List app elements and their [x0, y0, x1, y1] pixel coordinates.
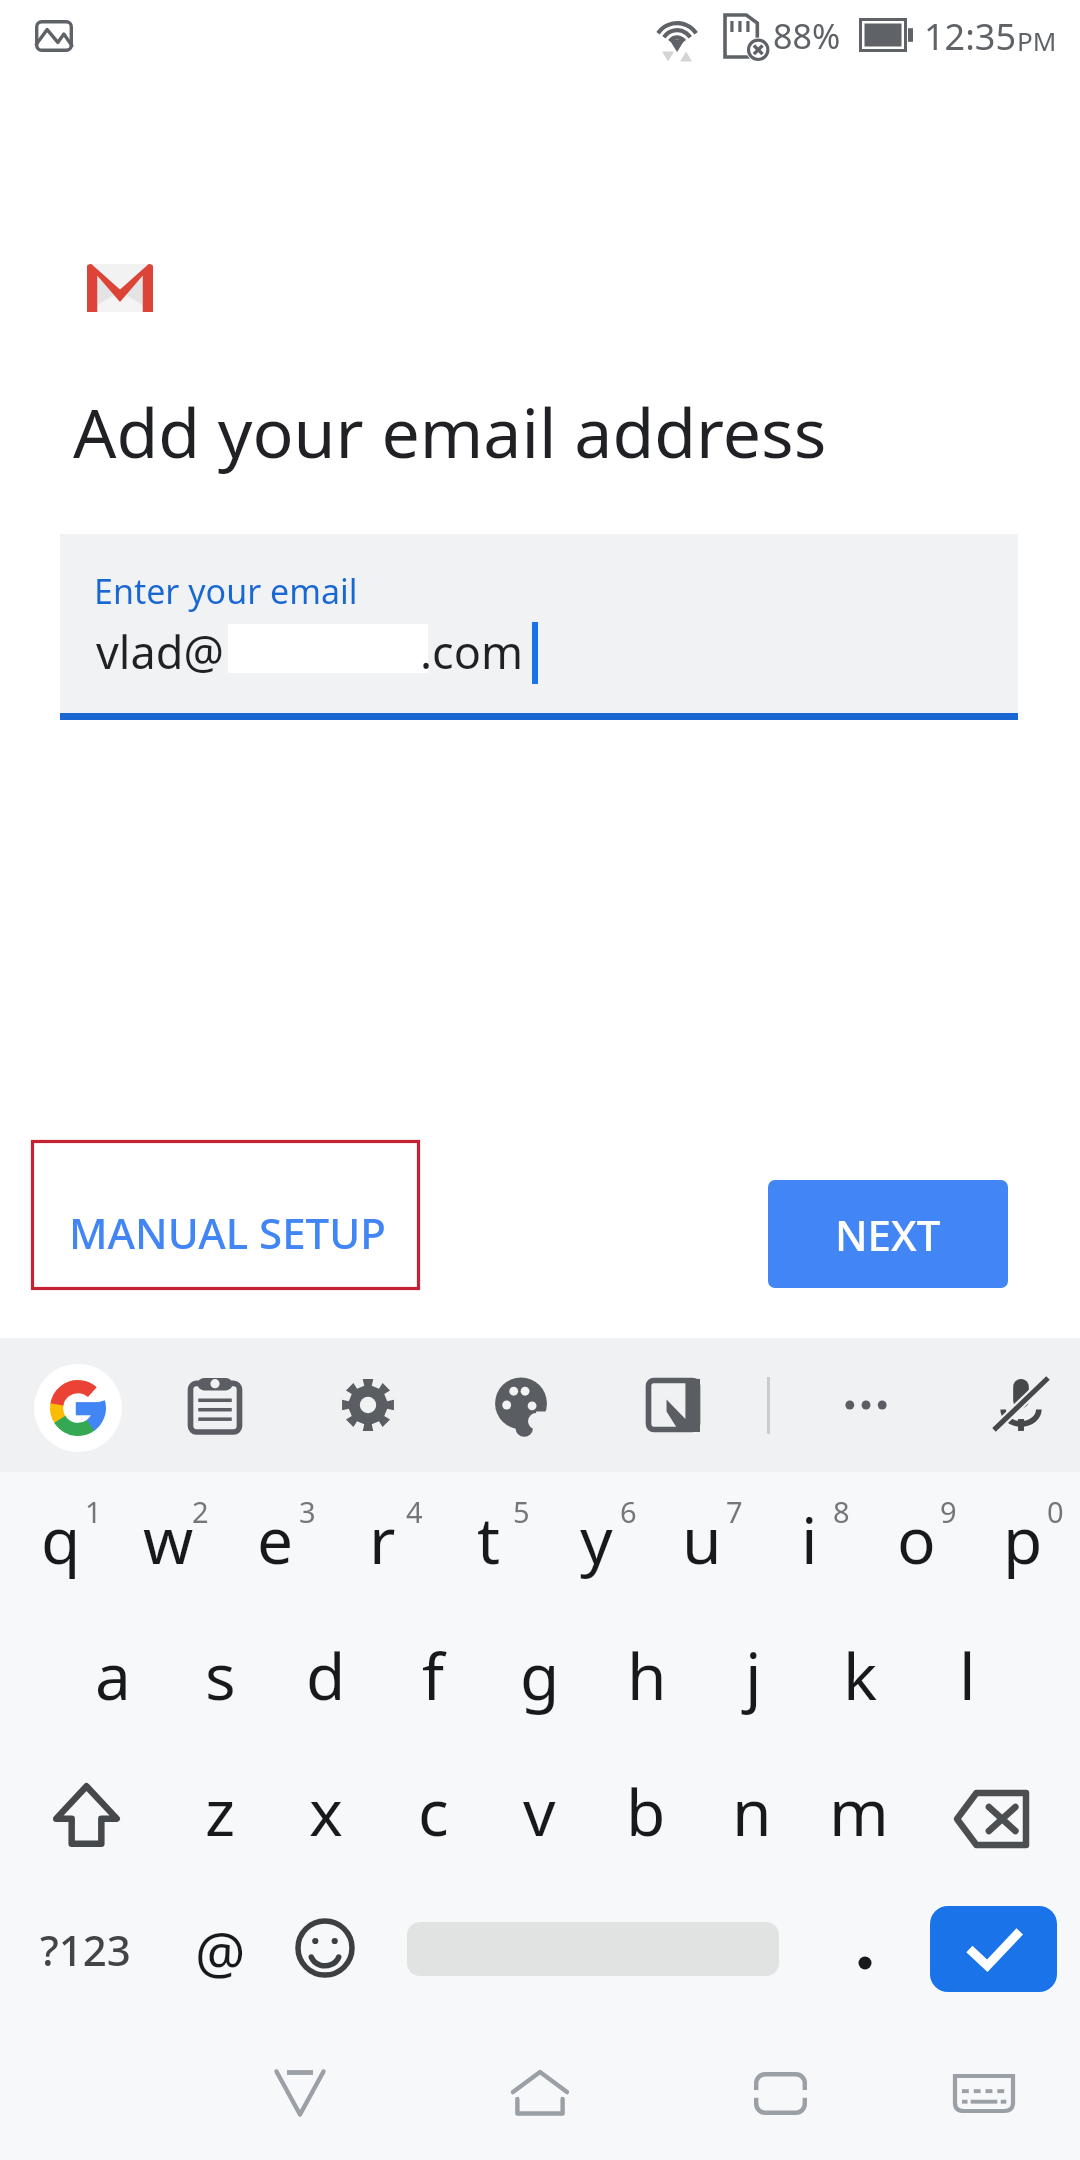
button[interactable]: l: [914, 1610, 1020, 1740]
staticText: g: [520, 1632, 560, 1719]
button[interactable]: r: [329, 1474, 435, 1604]
button[interactable]: d: [273, 1610, 379, 1740]
button[interactable]: More options: [822, 1361, 910, 1449]
staticText: d: [306, 1632, 346, 1719]
button[interactable]: @: [166, 1898, 274, 2008]
button[interactable]: h: [594, 1610, 700, 1740]
button[interactable]: Clipboard: [171, 1361, 259, 1449]
button[interactable]: [60, 534, 1018, 713]
staticText: e: [257, 1496, 294, 1583]
staticText: 1: [85, 1492, 102, 1531]
staticText: @: [195, 1914, 246, 1990]
button[interactable]: Home: [485, 2038, 595, 2148]
staticText: t: [477, 1496, 501, 1583]
button[interactable]: p: [970, 1474, 1076, 1604]
button[interactable]: Emoji: [271, 1893, 379, 2003]
button[interactable]: Recent apps: [725, 2038, 835, 2148]
button[interactable]: g: [487, 1610, 593, 1740]
staticText: n: [732, 1768, 772, 1855]
staticText: 8: [833, 1492, 850, 1531]
button[interactable]: i: [756, 1474, 862, 1604]
button[interactable]: MANUAL SETUP: [31, 1140, 420, 1290]
staticText: v: [523, 1768, 556, 1855]
button[interactable]: f: [380, 1610, 486, 1740]
staticText: .com: [420, 621, 523, 682]
staticText: l: [959, 1632, 976, 1719]
button[interactable]: b: [593, 1746, 699, 1876]
button[interactable]: Shift: [33, 1750, 139, 1880]
staticText: Enter your email: [94, 568, 358, 614]
button[interactable]: m: [806, 1746, 912, 1876]
staticText: h: [627, 1632, 667, 1719]
staticText: a: [95, 1632, 131, 1719]
button[interactable]: Backspace: [939, 1754, 1045, 1884]
button[interactable]: Themes: [477, 1361, 565, 1449]
staticText: o: [897, 1496, 936, 1583]
staticText: f: [422, 1632, 445, 1719]
staticText: z: [205, 1768, 236, 1855]
button[interactable]: y: [543, 1474, 649, 1604]
button[interactable]: w: [115, 1474, 221, 1604]
button[interactable]: x: [273, 1746, 379, 1876]
staticText: x: [309, 1768, 343, 1855]
button[interactable]: ?123: [20, 1898, 152, 2008]
staticText: r: [369, 1496, 396, 1583]
staticText: 12:35: [924, 12, 1017, 61]
button[interactable]: Google Assistant: [34, 1364, 122, 1452]
staticText: 6: [620, 1492, 637, 1531]
staticText: PM: [1017, 23, 1057, 58]
staticText: NEXT: [835, 1206, 941, 1263]
button[interactable]: z: [167, 1746, 273, 1876]
staticText: MANUAL SETUP: [69, 1204, 386, 1261]
button[interactable]: NEXT: [768, 1180, 1008, 1288]
staticText: b: [626, 1768, 666, 1855]
button[interactable]: Stickers: [629, 1361, 717, 1449]
staticText: vlad@: [96, 621, 224, 682]
staticText: m: [829, 1768, 889, 1855]
staticText: 7: [726, 1492, 743, 1531]
button[interactable]: t: [436, 1474, 542, 1604]
staticText: 5: [513, 1492, 530, 1531]
button[interactable]: Back: [245, 2038, 355, 2148]
button[interactable]: o: [863, 1474, 969, 1604]
button[interactable]: u: [649, 1474, 755, 1604]
button[interactable]: Settings: [324, 1361, 412, 1449]
button[interactable]: Enter: [930, 1906, 1057, 1992]
staticText: u: [682, 1496, 722, 1583]
staticText: 9: [940, 1492, 957, 1531]
staticText: 3: [299, 1492, 316, 1531]
staticText: 0: [1047, 1492, 1064, 1531]
staticText: p: [1003, 1496, 1043, 1583]
staticText: q: [41, 1496, 81, 1583]
staticText: Add your email address: [73, 385, 827, 478]
button[interactable]: e: [222, 1474, 328, 1604]
staticText: c: [418, 1768, 449, 1855]
button[interactable]: Hide keyboard: [929, 2038, 1039, 2148]
button[interactable]: q: [8, 1474, 114, 1604]
staticText: k: [843, 1632, 878, 1719]
button[interactable]: Voice input: [977, 1361, 1065, 1449]
button[interactable]: s: [167, 1610, 273, 1740]
button[interactable]: a: [60, 1610, 166, 1740]
staticText: w: [143, 1496, 194, 1583]
button[interactable]: v: [486, 1746, 592, 1876]
button[interactable]: k: [807, 1610, 913, 1740]
staticText: 2: [192, 1492, 209, 1531]
staticText: y: [580, 1496, 613, 1583]
staticText: 88%: [773, 13, 841, 59]
button[interactable]: [806, 1898, 912, 2008]
staticText: j: [745, 1632, 762, 1719]
staticText: i: [801, 1496, 818, 1583]
staticText: 4: [406, 1492, 423, 1531]
staticText: ?123: [40, 1921, 131, 1978]
button[interactable]: j: [700, 1610, 806, 1740]
staticText: s: [205, 1632, 236, 1719]
button[interactable]: n: [699, 1746, 805, 1876]
button[interactable]: c: [380, 1746, 486, 1876]
